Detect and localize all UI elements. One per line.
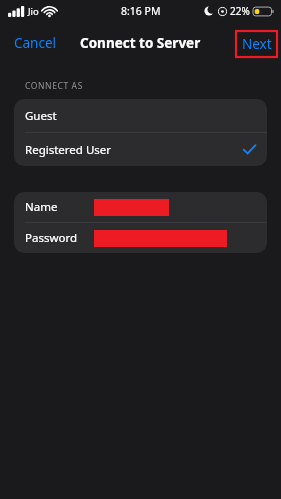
staticText: Guest xyxy=(25,108,57,124)
staticText: CONNECT AS xyxy=(25,80,83,92)
staticText: Next xyxy=(242,35,272,53)
staticText: 8:16 PM xyxy=(121,4,161,18)
button[interactable]: Next xyxy=(236,31,277,57)
staticText: Name xyxy=(25,199,58,215)
staticText: Registered User xyxy=(25,142,112,158)
staticText: 22% xyxy=(230,4,250,18)
button[interactable]: Guest xyxy=(14,99,267,132)
staticText: Cancel xyxy=(14,34,57,52)
button[interactable]: Name xyxy=(14,192,267,222)
staticText: Connect to Server xyxy=(80,34,201,52)
button[interactable]: Cancel xyxy=(10,30,61,56)
button[interactable]: Password xyxy=(14,223,267,253)
button[interactable]: Registered User xyxy=(14,133,267,166)
staticText: Password xyxy=(25,230,78,246)
staticText: Jio xyxy=(28,5,39,18)
